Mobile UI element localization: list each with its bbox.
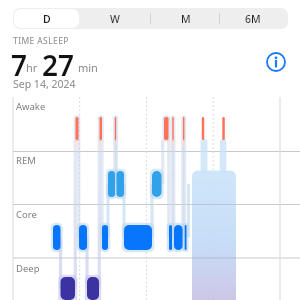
staticText: hr [26,60,38,75]
staticText: 7 [11,46,28,84]
staticText: Sep 14, 2024 [13,77,76,91]
staticText: TIME ASLEEP [13,35,69,47]
staticText: M [181,12,191,26]
button[interactable] [14,9,79,28]
staticText: 27 [42,46,75,84]
staticText: W [110,12,120,26]
staticText: Core [16,208,37,221]
staticText: Awake [16,100,46,113]
staticText: Deep [16,262,40,275]
staticText: min [78,60,98,75]
staticText: D [43,12,51,26]
button[interactable] [264,50,288,74]
button[interactable]: W [95,10,135,27]
button[interactable]: 6M [233,10,273,27]
staticText: REM [16,154,36,167]
button[interactable]: D [27,10,67,27]
staticText: 6M [245,12,261,26]
button[interactable]: M [166,10,206,27]
